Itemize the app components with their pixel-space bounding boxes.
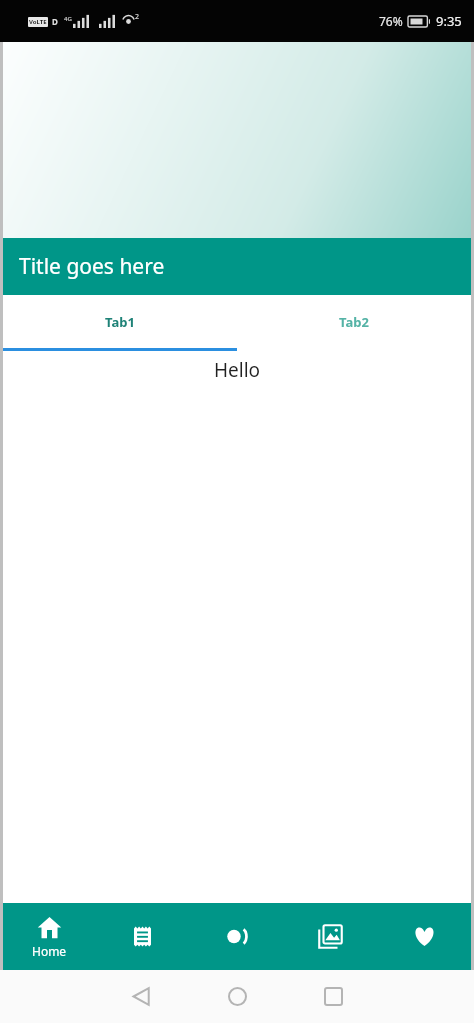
button[interactable]: Gallery <box>283 903 377 970</box>
button[interactable]: Title goes here <box>3 238 471 295</box>
staticText: Tab1 <box>105 313 135 331</box>
staticText: Tab2 <box>339 313 369 331</box>
staticText: Home <box>32 943 67 959</box>
button[interactable]: Tab1 <box>3 295 237 348</box>
staticText: Hello <box>214 357 261 383</box>
staticText: Title goes here <box>19 252 165 281</box>
button[interactable]: Receipts <box>96 903 189 970</box>
button[interactable]: Home <box>206 970 268 1023</box>
button[interactable]: Favorites <box>377 903 471 970</box>
staticText: 9:35 <box>436 12 462 30</box>
staticText: 4G <box>64 15 72 23</box>
staticText: 76% <box>379 13 403 29</box>
staticText: VoLTE <box>29 18 47 26</box>
button[interactable]: Back <box>110 970 172 1023</box>
button[interactable]: Recents <box>302 970 364 1023</box>
staticText: 2 <box>135 12 140 22</box>
button[interactable]: Tab2 <box>237 295 471 348</box>
button[interactable]: Home <box>3 903 96 970</box>
staticText: D <box>52 16 58 27</box>
button[interactable]: Broadcast <box>189 903 283 970</box>
